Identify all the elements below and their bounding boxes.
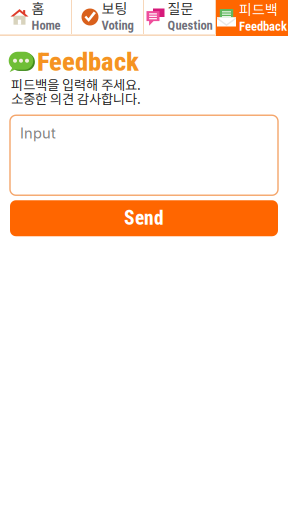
staticText: 홈 [31, 0, 44, 18]
staticText: 보팅 [101, 0, 127, 18]
staticText: Home [31, 18, 60, 33]
staticText: 소중한 의견 감사합니다. [11, 89, 141, 108]
button[interactable]: 홈 [0, 0, 71, 34]
staticText: 피드백 [239, 0, 278, 19]
staticText: Input [20, 124, 56, 142]
staticText: Question [167, 18, 212, 33]
staticText: Voting [101, 18, 133, 33]
button[interactable]: Send [10, 200, 278, 236]
staticText: Feedback [37, 46, 139, 77]
staticText: Send [124, 207, 164, 230]
staticText: 질문 [167, 0, 193, 18]
button[interactable]: 질문 [144, 0, 215, 34]
button[interactable]: 피드백 [216, 0, 288, 36]
button[interactable]: 보팅 [72, 0, 143, 34]
staticText: 피드백을 입력해 주세요. [11, 75, 141, 94]
staticText: Feedback [239, 19, 287, 34]
